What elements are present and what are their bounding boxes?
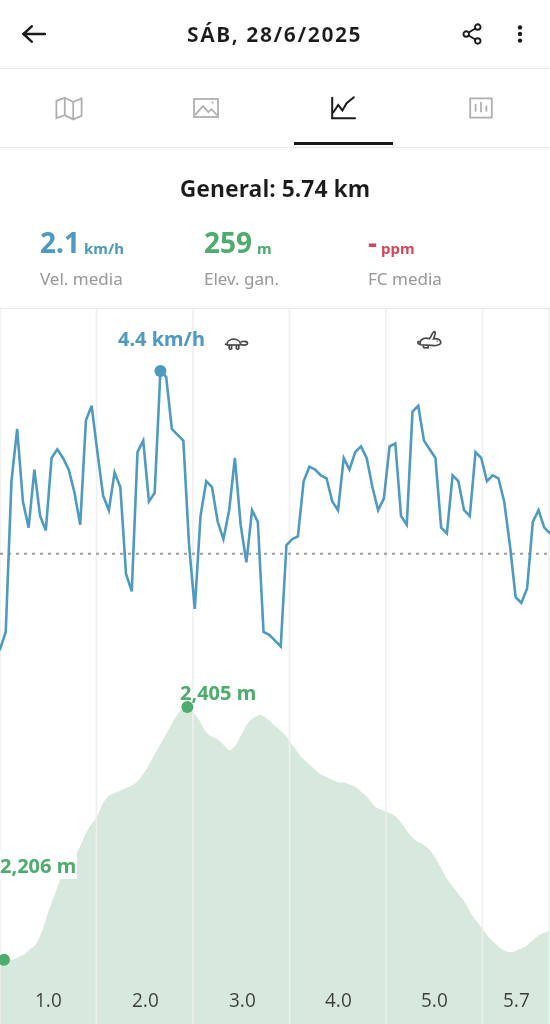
button[interactable]: Photos tab — [137, 69, 274, 147]
staticText: 2.1 — [40, 223, 80, 261]
button[interactable]: Back — [8, 8, 60, 60]
staticText: 5.7 — [503, 987, 530, 1013]
staticText: ppm — [381, 238, 415, 258]
staticText: 2.0 — [132, 987, 159, 1013]
staticText: 1.0 — [35, 987, 62, 1013]
staticText: SÁB, 28/6/2025 — [187, 20, 363, 49]
staticText: km/h — [84, 238, 124, 258]
staticText: 5.0 — [421, 987, 448, 1013]
staticText: Vel. media — [40, 267, 123, 290]
button[interactable]: Map tab — [0, 69, 137, 147]
staticText: Elev. gan. — [204, 267, 280, 290]
button[interactable]: 2.1 — [40, 223, 204, 290]
staticText: 4.0 — [325, 987, 352, 1013]
staticText: 4.4 km/h — [118, 325, 205, 352]
button[interactable]: 259 — [204, 223, 368, 290]
staticText: 3.0 — [229, 987, 256, 1013]
staticText: General: 5.74 km — [0, 172, 550, 203]
staticText: - — [368, 223, 377, 261]
button[interactable]: More options — [496, 10, 544, 58]
staticText: 2,405 m — [180, 679, 257, 706]
button[interactable]: - — [368, 223, 532, 290]
staticText: 259 — [204, 223, 253, 261]
button[interactable]: Share — [448, 10, 496, 58]
staticText: m — [257, 238, 272, 258]
staticText: 2,206 m — [0, 852, 77, 879]
button[interactable]: Bars tab — [412, 69, 550, 147]
button[interactable]: Charts tab — [274, 69, 412, 147]
staticText: FC media — [368, 267, 442, 290]
